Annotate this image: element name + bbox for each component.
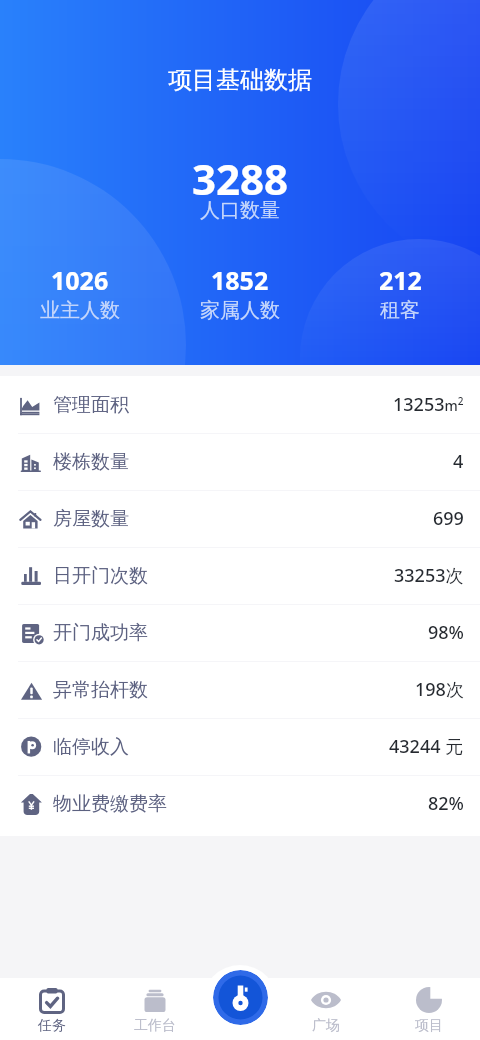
staticText: 人口数量 [0, 198, 480, 223]
staticText: 33253次 [394, 563, 464, 588]
button[interactable]: Unlock [213, 970, 268, 1025]
button[interactable]: 异常抬杆数 [0, 661, 480, 718]
staticText: 699 [433, 506, 464, 531]
staticText: 3288 [0, 150, 480, 207]
staticText: 家属人数 [200, 298, 280, 323]
staticText: 租客 [380, 298, 420, 323]
staticText: 房屋数量 [53, 507, 129, 531]
staticText: 13253m2 [393, 392, 464, 417]
staticText: 管理面积 [53, 393, 129, 417]
button[interactable]: 临停收入 [0, 718, 480, 775]
staticText: 广场 [312, 1017, 340, 1035]
staticText: 1026 [51, 263, 109, 297]
button[interactable]: 广场 [274, 978, 377, 1040]
staticText: 开门成功率 [53, 621, 148, 645]
button[interactable]: 管理面积 [0, 376, 480, 433]
staticText: 1852 [211, 263, 269, 297]
staticText: 临停收入 [53, 735, 129, 759]
button[interactable]: 开门成功率 [0, 604, 480, 661]
staticText: 198次 [415, 677, 464, 702]
button[interactable]: 房屋数量 [0, 490, 480, 547]
button[interactable]: 物业费缴费率 [0, 775, 480, 832]
button[interactable]: 日开门次数 [0, 547, 480, 604]
staticText: 任务 [38, 1017, 66, 1035]
staticText: 98% [428, 620, 464, 645]
staticText: 212 [379, 263, 422, 297]
staticText: 项目 [415, 1017, 443, 1035]
staticText: 工作台 [134, 1017, 176, 1035]
staticText: 日开门次数 [53, 564, 148, 588]
button[interactable]: 任务 [0, 978, 103, 1040]
staticText: 43244 元 [389, 734, 464, 759]
staticText: 异常抬杆数 [53, 678, 148, 702]
button[interactable]: 项目 [377, 978, 480, 1040]
button[interactable]: 楼栋数量 [0, 433, 480, 490]
button[interactable]: 工作台 [103, 978, 206, 1040]
staticText: 业主人数 [40, 298, 120, 323]
staticText: 4 [453, 449, 464, 474]
staticText: 物业费缴费率 [53, 792, 167, 816]
staticText: 楼栋数量 [53, 450, 129, 474]
staticText: 82% [428, 791, 464, 816]
staticText: 项目基础数据 [0, 65, 480, 95]
